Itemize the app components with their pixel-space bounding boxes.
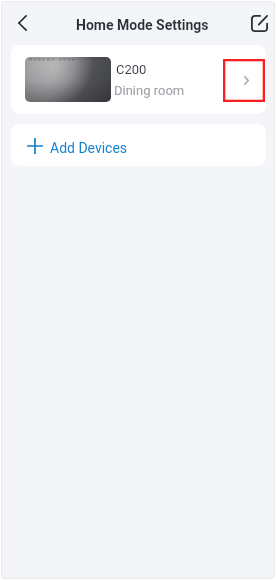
button[interactable]: Edit bbox=[245, 9, 273, 37]
staticText: Dining room bbox=[114, 83, 185, 98]
staticText: C200 bbox=[116, 62, 147, 77]
button[interactable]: Back bbox=[8, 9, 36, 37]
button[interactable]: Add Devices bbox=[11, 124, 266, 166]
staticText: Add Devices bbox=[50, 140, 128, 156]
staticText: Home Mode Settings bbox=[76, 17, 209, 33]
button[interactable]: C200 bbox=[11, 45, 266, 114]
